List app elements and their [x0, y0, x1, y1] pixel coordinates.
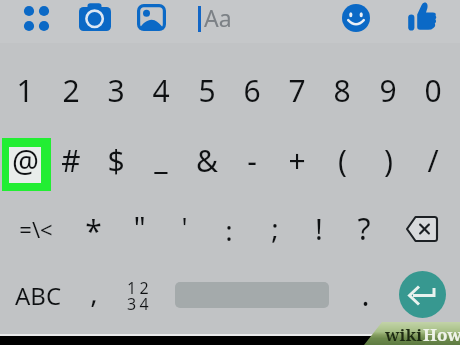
staticText: 4: [152, 70, 170, 111]
button[interactable]: $: [93, 137, 139, 183]
staticText: 0: [424, 70, 442, 111]
staticText: .: [361, 274, 370, 315]
staticText: /: [427, 140, 439, 181]
button[interactable]: &: [184, 137, 230, 183]
staticText: 9: [379, 70, 397, 111]
staticText: ;: [271, 209, 279, 247]
staticText: ": [133, 207, 146, 248]
staticText: :: [225, 211, 233, 249]
button[interactable]: Camera: [76, 0, 116, 36]
staticText: 3: [107, 70, 125, 111]
staticText: #: [61, 140, 81, 181]
staticText: !: [315, 209, 323, 248]
button[interactable]: 8: [319, 67, 365, 113]
staticText: wiki: [385, 323, 423, 345]
staticText: ,: [90, 273, 98, 311]
button[interactable]: ': [161, 204, 207, 250]
button[interactable]: 7: [274, 67, 320, 113]
button[interactable]: 4: [138, 67, 184, 113]
button[interactable]: +: [274, 137, 320, 183]
button[interactable]: Enter: [399, 271, 446, 318]
staticText: Aa: [204, 2, 232, 33]
button[interactable]: :: [206, 207, 252, 253]
button[interactable]: 1: [2, 67, 48, 113]
staticText: 5: [198, 70, 216, 111]
button[interactable]: More options: [18, 0, 58, 38]
button[interactable]: Like: [405, 0, 441, 36]
staticText: 6: [243, 70, 261, 111]
button[interactable]: Numbers: [117, 272, 163, 318]
button[interactable]: *: [70, 207, 116, 253]
button[interactable]: 0: [410, 67, 456, 113]
button[interactable]: .: [342, 271, 388, 317]
staticText: ): [384, 140, 393, 181]
button[interactable]: ): [365, 137, 411, 183]
button[interactable]: _: [138, 134, 184, 180]
button[interactable]: #: [48, 137, 94, 183]
staticText: +: [288, 140, 306, 181]
staticText: 3 4: [127, 293, 149, 315]
button[interactable]: Aa: [190, 2, 330, 40]
staticText: ?: [357, 208, 371, 249]
staticText: $: [107, 140, 125, 181]
staticText: ABC: [15, 279, 62, 312]
button[interactable]: ;: [252, 205, 298, 251]
staticText: @: [12, 140, 39, 181]
button[interactable]: 3: [93, 67, 139, 113]
button[interactable]: ABC: [10, 272, 66, 318]
staticText: 1: [16, 70, 34, 111]
staticText: =\<: [19, 214, 53, 244]
staticText: _: [154, 137, 168, 178]
staticText: How: [423, 323, 460, 345]
staticText: 1 2: [127, 277, 149, 299]
staticText: (: [338, 140, 347, 181]
button[interactable]: ,: [71, 269, 117, 315]
button[interactable]: ": [116, 204, 162, 250]
button[interactable]: /: [410, 137, 456, 183]
staticText: 8: [333, 70, 351, 111]
button[interactable]: Backspace: [399, 207, 445, 253]
button[interactable]: @: [2, 137, 48, 183]
button[interactable]: (: [319, 137, 365, 183]
button[interactable]: 6: [229, 67, 275, 113]
button[interactable]: Stickers: [340, 2, 372, 34]
staticText: *: [85, 210, 102, 251]
staticText: 7: [288, 70, 306, 111]
staticText: -: [247, 140, 257, 181]
button[interactable]: =\<: [13, 206, 59, 252]
button[interactable]: 2: [48, 67, 94, 113]
button[interactable]: -: [229, 137, 275, 183]
button[interactable]: ?: [341, 205, 387, 251]
button[interactable]: 5: [184, 67, 230, 113]
staticText: &: [196, 140, 218, 181]
button[interactable]: 9: [365, 67, 411, 113]
staticText: ': [181, 209, 188, 246]
button[interactable]: Gallery: [134, 0, 170, 36]
staticText: 2: [62, 70, 80, 111]
button[interactable]: !: [296, 205, 342, 251]
